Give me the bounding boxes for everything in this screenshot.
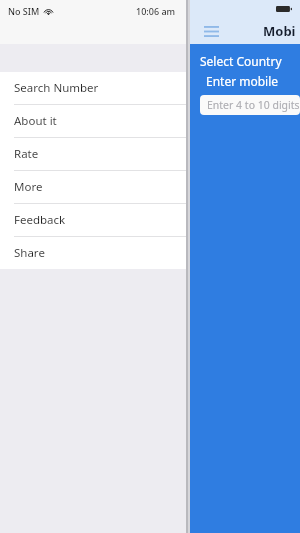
staticText: Share — [14, 245, 45, 261]
staticText: Select Country — [200, 53, 282, 69]
staticText: More — [14, 179, 43, 195]
staticText: Feedback — [14, 212, 66, 228]
staticText: No SIM — [8, 5, 40, 17]
button[interactable]: Search Number — [0, 72, 186, 104]
button[interactable]: Enter 4 to 10 digits — [200, 95, 300, 115]
staticText: Mobi — [263, 22, 296, 40]
button[interactable]: Open navigation menu — [198, 20, 224, 42]
button[interactable]: Select Country — [190, 51, 300, 71]
button[interactable]: Rate — [0, 138, 186, 170]
staticText: 10:06 am — [136, 5, 176, 17]
staticText: About it — [14, 113, 57, 129]
staticText: Rate — [14, 146, 39, 162]
staticText: Enter 4 to 10 digits — [207, 98, 300, 112]
button[interactable]: About it — [0, 105, 186, 137]
staticText: Search Number — [14, 80, 99, 96]
staticText: Enter mobile Num — [206, 73, 300, 89]
button[interactable]: Share — [0, 237, 186, 269]
button[interactable]: Feedback — [0, 204, 186, 236]
button[interactable]: More — [0, 171, 186, 203]
